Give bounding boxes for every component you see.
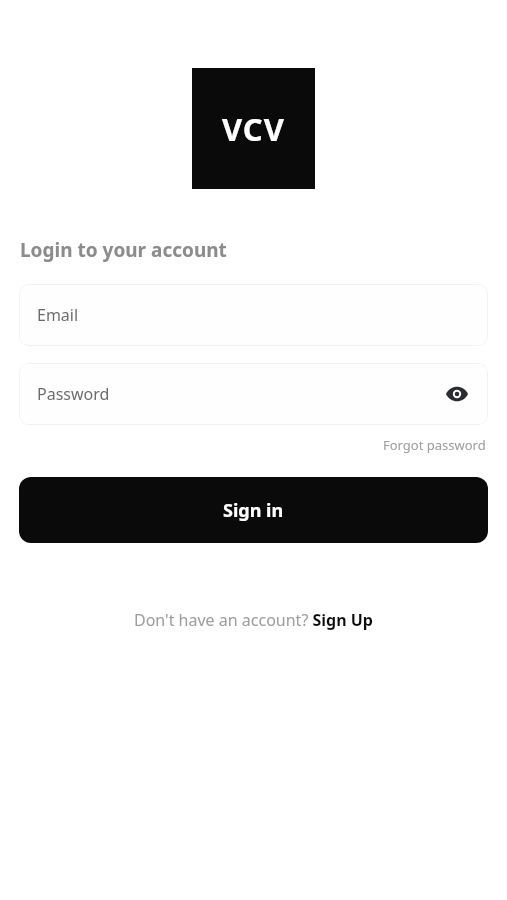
staticText: Password — [37, 383, 110, 405]
staticText: VCV — [222, 108, 285, 150]
staticText: Forgot password — [383, 436, 486, 454]
button[interactable]: Email — [19, 284, 488, 346]
button[interactable]: Sign in — [19, 477, 488, 543]
button[interactable]: Show password — [444, 381, 470, 407]
staticText: Login to your account — [20, 237, 227, 263]
button[interactable]: Forgot password — [380, 433, 489, 457]
staticText: Email — [37, 304, 79, 326]
button[interactable]: Password — [19, 363, 488, 425]
staticText: Don't have an account? Sign Up — [134, 609, 373, 631]
staticText: Sign in — [223, 498, 284, 523]
button[interactable]: Don't have an account? Sign Up — [130, 605, 377, 635]
